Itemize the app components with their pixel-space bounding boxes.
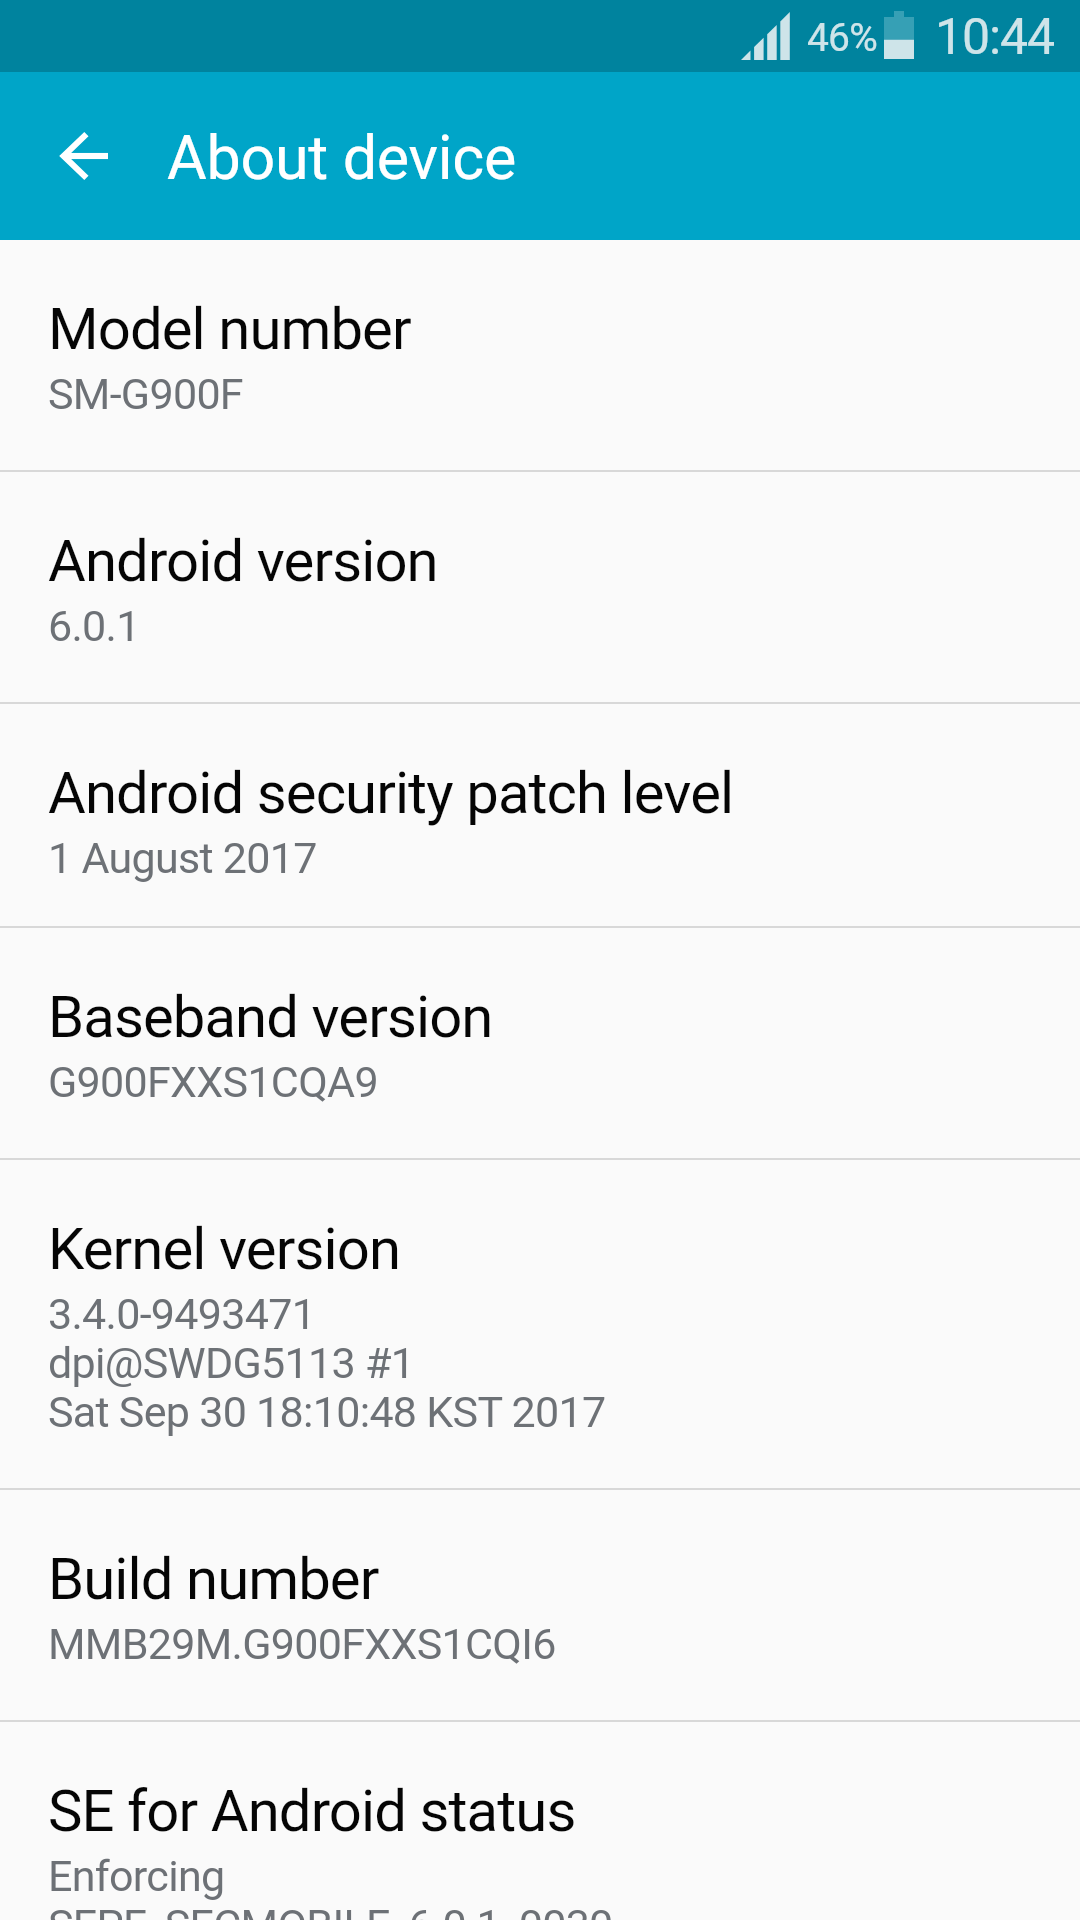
staticText: About device: [167, 122, 516, 193]
staticText: 1 August 2017: [48, 833, 317, 883]
staticText: SM-G900F: [48, 369, 243, 419]
staticText: Build number: [48, 1545, 379, 1613]
staticText: 46%: [807, 15, 878, 61]
staticText: Kernel version: [48, 1215, 401, 1283]
button[interactable]: Kernel version: [0, 1160, 1080, 1488]
staticText: MMB29M.G900FXXS1CQI6: [48, 1619, 556, 1669]
button[interactable]: SE for Android status: [0, 1722, 1080, 1920]
button[interactable]: Build number: [0, 1490, 1080, 1720]
staticText: Baseband version: [48, 983, 493, 1051]
button[interactable]: Android version: [0, 472, 1080, 702]
button[interactable]: Android security patch level: [0, 704, 1080, 926]
staticText: 3.4.0-9493471 dpi@SWDG5113 #1 Sat Sep 30…: [48, 1289, 606, 1437]
button[interactable]: Navigate up: [36, 108, 132, 204]
staticText: 10:44: [935, 8, 1055, 67]
staticText: SE for Android status: [48, 1777, 576, 1845]
staticText: 6.0.1: [48, 601, 140, 651]
staticText: Enforcing SEPF_SECMOBILE_6.0.1_0030: [48, 1851, 613, 1920]
staticText: Android version: [48, 527, 438, 595]
button[interactable]: Model number: [0, 240, 1080, 470]
button[interactable]: Baseband version: [0, 928, 1080, 1158]
staticText: Model number: [48, 295, 411, 363]
staticText: Android security patch level: [48, 759, 734, 827]
staticText: G900FXXS1CQA9: [48, 1057, 378, 1107]
